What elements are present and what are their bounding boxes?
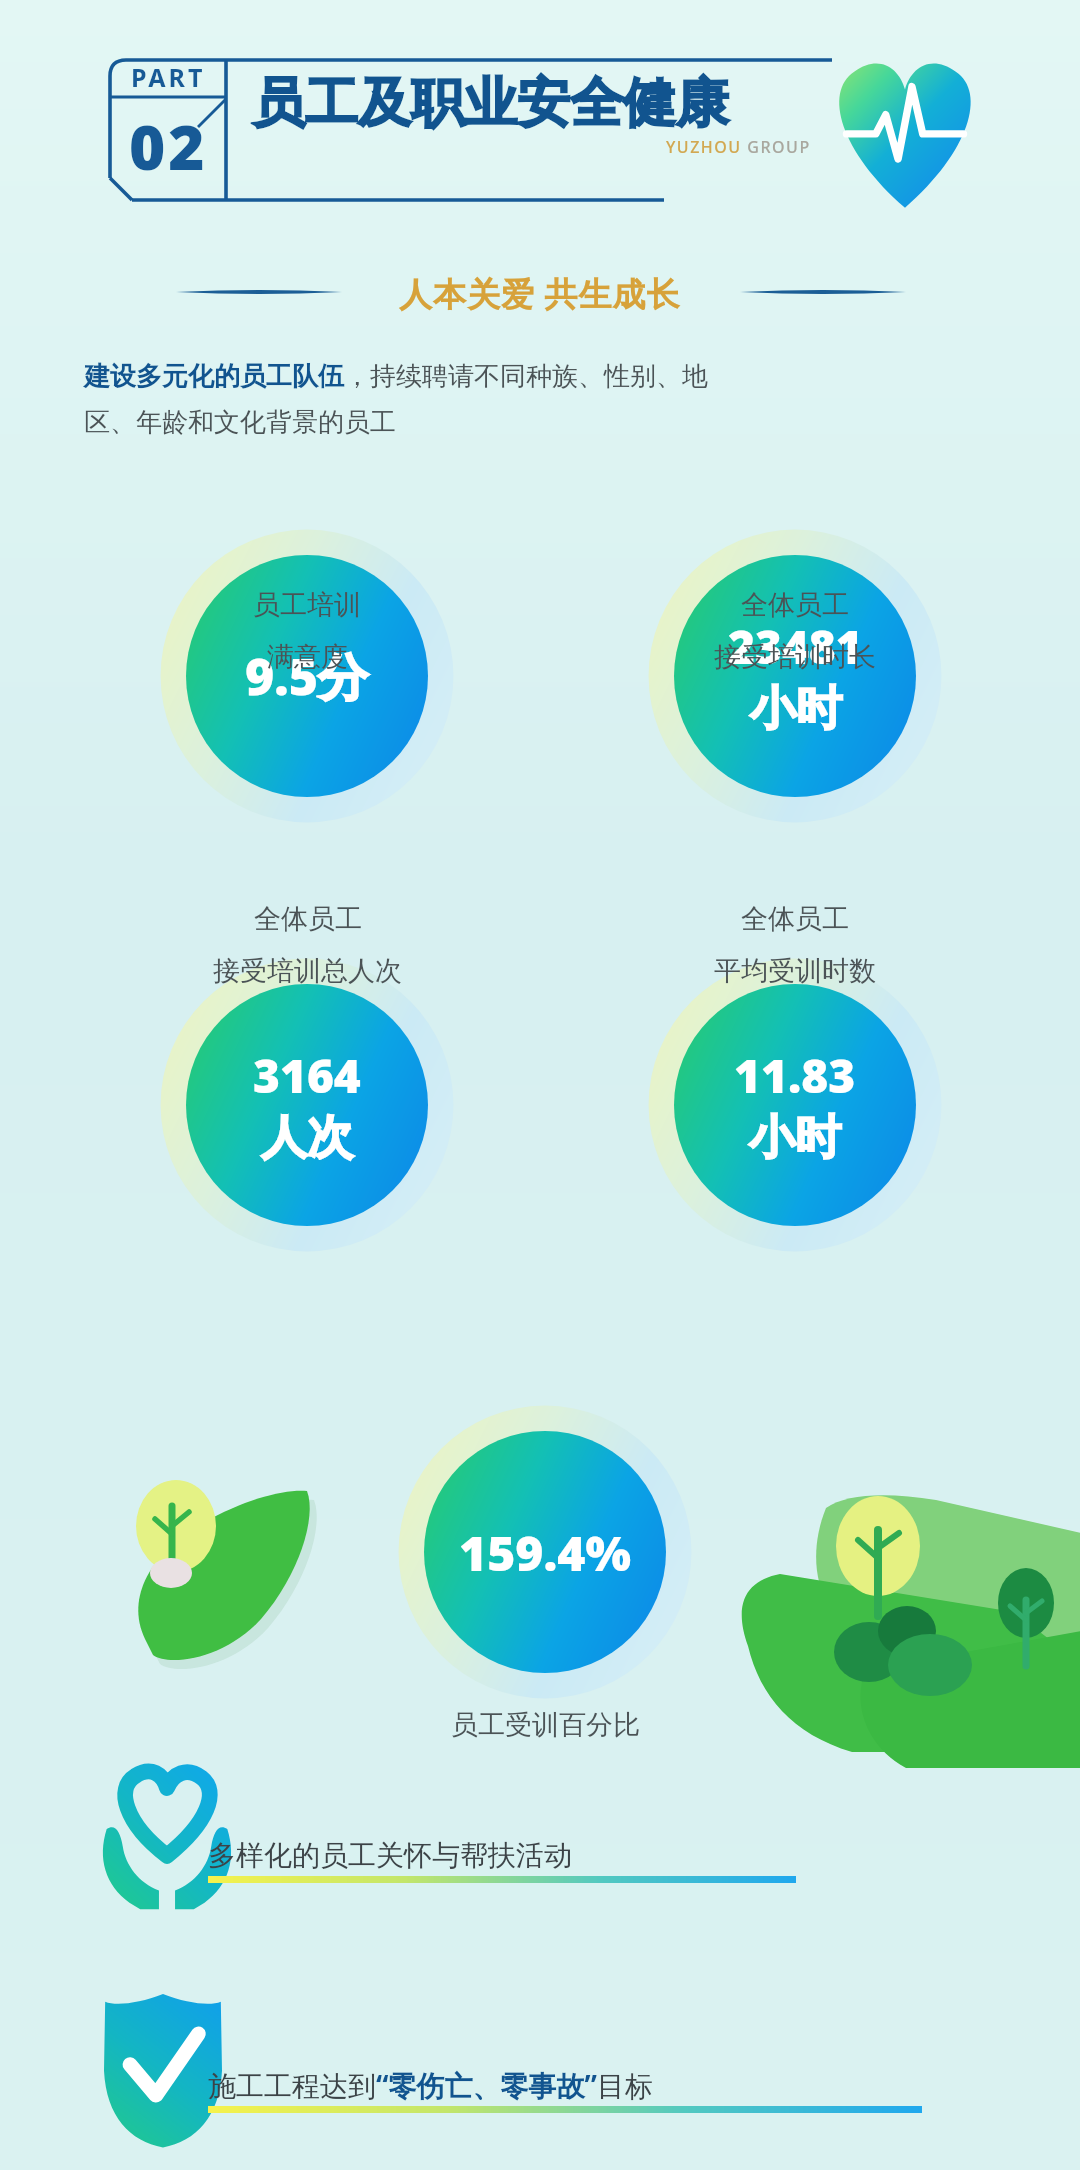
button[interactable]: 全体员工	[107, 902, 507, 988]
staticText: 全体员工	[741, 902, 849, 936]
staticText: 23481	[728, 615, 863, 678]
staticText: 满意度	[267, 640, 348, 674]
staticText: PART	[131, 60, 206, 94]
staticText: 施工工程达到“零伤亡、零事故”目标	[208, 2066, 653, 2104]
button[interactable]: 全体员工	[595, 588, 995, 674]
button[interactable]: Safety shield	[100, 1990, 226, 2146]
staticText: 02	[129, 104, 208, 188]
staticText: 员工受训百分比	[451, 1708, 640, 1742]
staticText: 员工培训	[253, 588, 361, 622]
staticText: YUZHOU GROUP	[666, 136, 811, 158]
staticText: 3164	[253, 1044, 361, 1107]
staticText: 员工及职业安全健康	[252, 70, 729, 137]
staticText: 11.83	[734, 1044, 856, 1107]
staticText: 全体员工	[741, 588, 849, 622]
button[interactable]: 多样化的员工关怀与帮扶活动	[208, 1826, 808, 1884]
staticText: 建设多元化的员工队伍，持续聘请不同种族、性别、地区、年龄和文化背景的员工	[84, 360, 716, 439]
staticText: 159.4%	[459, 1520, 631, 1585]
staticText: 人本关爱 共生成长	[399, 271, 681, 316]
staticText: 接受培训时长	[714, 640, 876, 674]
button[interactable]: 施工工程达到“零伤亡、零事故”目标	[208, 2056, 948, 2114]
staticText: 人次	[261, 1109, 353, 1167]
staticText: 小时	[749, 1109, 841, 1167]
staticText: 小时	[750, 680, 842, 738]
button[interactable]: 全体员工	[595, 902, 995, 988]
staticText: 9.5分	[245, 642, 369, 710]
staticText: 平均受训时数	[714, 954, 876, 988]
button[interactable]: Health	[820, 55, 990, 215]
staticText: 多样化的员工关怀与帮扶活动	[208, 1838, 572, 1873]
staticText: 全体员工	[254, 902, 362, 936]
button[interactable]: 员工受训百分比	[245, 1708, 845, 1742]
button[interactable]: 员工培训	[107, 588, 507, 674]
button[interactable]: Employee care	[96, 1766, 238, 1908]
staticText: 接受培训总人次	[213, 954, 402, 988]
